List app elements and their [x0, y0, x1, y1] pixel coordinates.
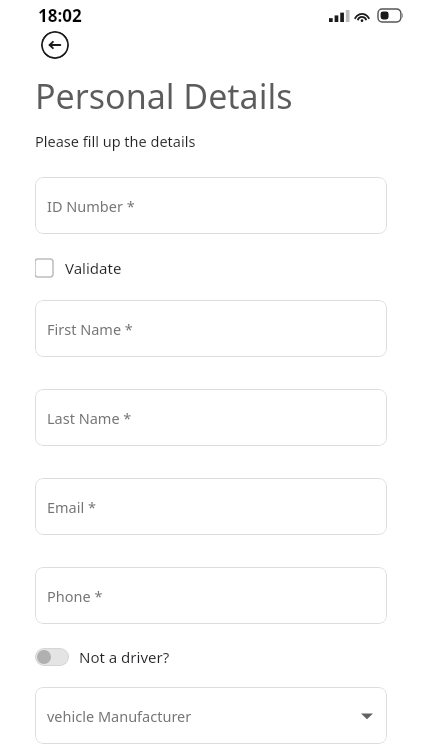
staticText: vehicle Manufacturer	[47, 706, 192, 726]
staticText: Phone *	[47, 586, 103, 606]
staticText: Not a driver?	[79, 647, 170, 667]
staticText: Validate	[65, 258, 122, 278]
button[interactable]: Validate	[35, 256, 122, 280]
button[interactable]: Phone *	[35, 567, 387, 624]
staticText: 18:02	[38, 4, 82, 27]
staticText: Please fill up the details	[35, 131, 196, 151]
button[interactable]: vehicle Manufacturer	[35, 687, 387, 744]
staticText: Last Name *	[47, 408, 132, 428]
staticText: ID Number *	[47, 196, 135, 216]
staticText: Email *	[47, 497, 96, 517]
staticText: Personal Details	[35, 73, 293, 119]
staticText: First Name *	[47, 319, 133, 339]
button[interactable]: First Name *	[35, 300, 387, 357]
button[interactable]: ID Number *	[35, 177, 387, 234]
button[interactable]: Email *	[35, 478, 387, 535]
button[interactable]: Back	[41, 31, 69, 59]
button[interactable]: Last Name *	[35, 389, 387, 446]
button[interactable]: Not a driver?	[35, 645, 170, 669]
